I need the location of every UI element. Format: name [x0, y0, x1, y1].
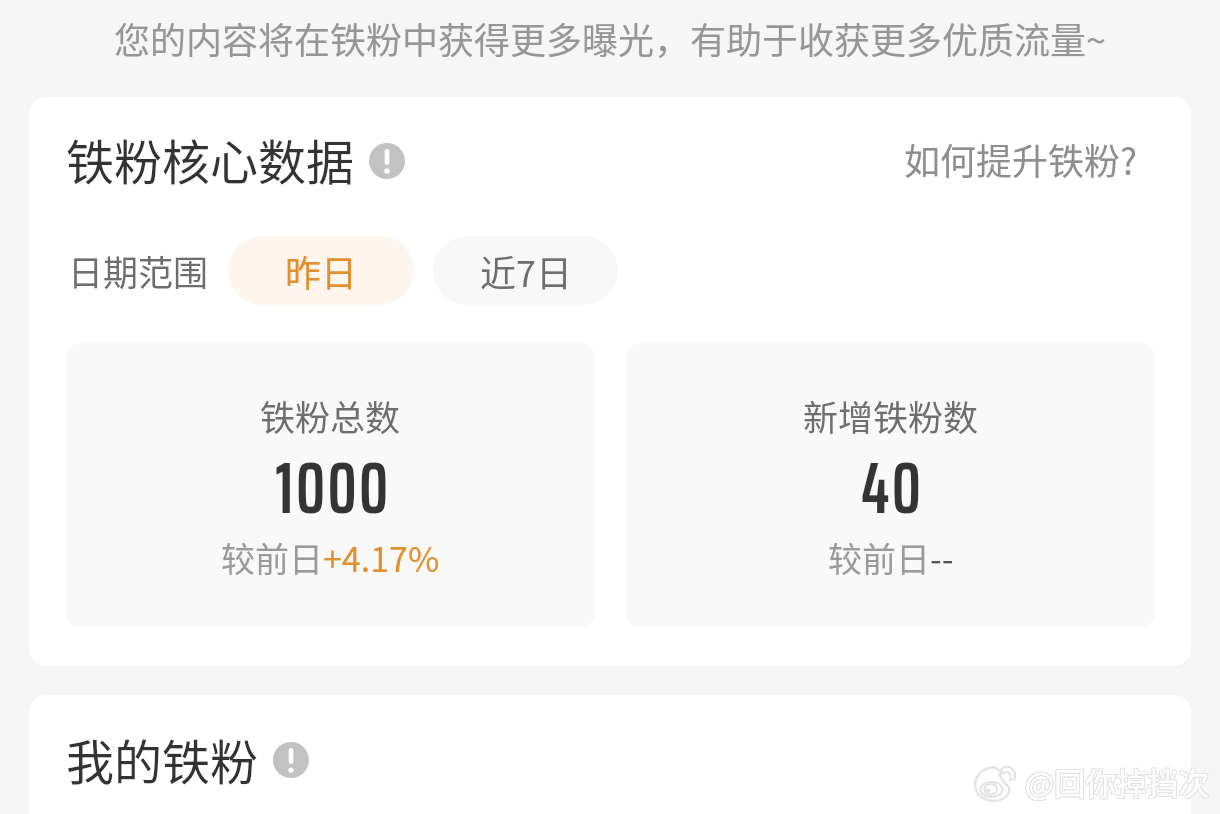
staticText: @回你掉挡次 — [1026, 758, 1211, 803]
staticText: @回你掉挡次 — [1026, 760, 1211, 805]
staticText: @回你掉挡次 — [1025, 758, 1210, 803]
staticText: @回你掉挡次 — [1024, 758, 1209, 803]
staticText: 较前日-- — [828, 533, 954, 582]
staticText: 我的铁粉 — [66, 724, 259, 794]
button[interactable]: 新增铁粉数 — [626, 343, 1155, 627]
button[interactable]: 我的铁粉 — [66, 724, 309, 794]
staticText: 如何提升铁粉? — [904, 133, 1138, 185]
button[interactable]: 昨日 — [228, 236, 414, 305]
staticText: 40 — [861, 430, 924, 545]
staticText: 1000 — [275, 430, 391, 545]
staticText: 近7日 — [480, 245, 572, 297]
other: About 我的铁粉 — [273, 742, 309, 778]
staticText: 铁粉总数 — [260, 390, 401, 441]
staticText: 较前日+4.17% — [221, 533, 440, 582]
button[interactable]: 铁粉总数 — [66, 343, 595, 627]
staticText: 新增铁粉数 — [803, 390, 979, 441]
staticText: @回你掉挡次 — [1026, 759, 1211, 804]
staticText: 日期范围 — [68, 245, 209, 296]
staticText: 您的内容将在铁粉中获得更多曝光，有助于收获更多优质流量~ — [114, 12, 1106, 64]
other: About 铁粉核心数据 — [369, 143, 405, 179]
button[interactable]: 近7日 — [433, 236, 618, 305]
staticText: 铁粉核心数据 — [66, 124, 355, 194]
staticText: @回你掉挡次 — [1025, 760, 1210, 805]
staticText: @回你掉挡次 — [1025, 759, 1210, 804]
staticText: 昨日 — [285, 245, 358, 297]
button[interactable]: 如何提升铁粉? — [904, 133, 1138, 185]
button[interactable]: 铁粉核心数据 — [66, 124, 405, 194]
staticText: @回你掉挡次 — [1024, 760, 1209, 805]
staticText: @回你掉挡次 — [1024, 759, 1209, 804]
